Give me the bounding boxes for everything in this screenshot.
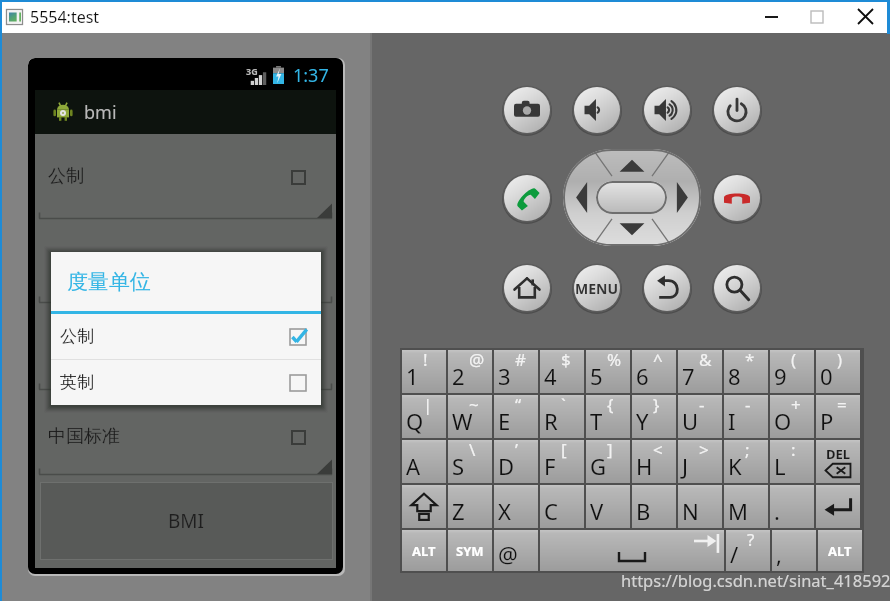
button[interactable]: End call (712, 173, 762, 223)
button[interactable]: W (448, 395, 492, 438)
button[interactable]: Space (540, 530, 724, 571)
staticText: K (728, 451, 742, 481)
staticText: S (452, 451, 465, 481)
button[interactable]: 0 (816, 350, 860, 393)
staticText: ’ (515, 438, 518, 461)
button[interactable]: 公制 (35, 134, 336, 220)
button[interactable]: . (770, 485, 814, 528)
staticText: V (590, 496, 604, 526)
button[interactable]: Home (502, 263, 552, 313)
button[interactable]: Select (596, 181, 667, 214)
button[interactable]: Maximize (794, 0, 840, 33)
staticText: Z (452, 496, 465, 526)
button[interactable]: @ (494, 530, 538, 571)
staticText: T (590, 406, 603, 436)
button[interactable]: O (770, 395, 814, 438)
staticText: 度量单位 (67, 269, 151, 295)
button[interactable]: 英制 (51, 360, 321, 405)
staticText: & (699, 348, 712, 371)
button[interactable]: MENU (572, 263, 622, 313)
staticText: A (406, 451, 421, 481)
button[interactable]: P (816, 395, 860, 438)
button[interactable] (35, 304, 336, 391)
button[interactable]: Volume up (642, 85, 692, 135)
button[interactable]: Call (502, 173, 552, 223)
button[interactable]: X (494, 485, 538, 528)
button[interactable]: 公制 (51, 314, 321, 359)
button[interactable]: H (632, 440, 676, 483)
button[interactable]: V (586, 485, 630, 528)
staticText: MENU (575, 279, 619, 298)
button[interactable]: 3 (494, 350, 538, 393)
button[interactable]: R (540, 395, 584, 438)
button[interactable]: Search (712, 263, 762, 313)
button[interactable]: Power (712, 85, 762, 135)
button[interactable]: 1 (402, 350, 446, 393)
button[interactable]: ALT (402, 530, 446, 571)
button[interactable]: G (586, 440, 630, 483)
staticText: U (682, 406, 699, 436)
button[interactable]: , (772, 530, 816, 571)
button[interactable]: U (678, 395, 722, 438)
button[interactable]: M (724, 485, 768, 528)
staticText: | (423, 393, 433, 416)
button[interactable]: 5 (586, 350, 630, 393)
button[interactable]: Delete (816, 440, 860, 483)
button[interactable]: 7 (678, 350, 722, 393)
button[interactable]: 9 (770, 350, 814, 393)
staticText: ( (791, 348, 797, 371)
button[interactable]: K (724, 440, 768, 483)
staticText: B (636, 496, 651, 526)
button[interactable]: Shift (402, 485, 446, 528)
button[interactable]: 4 (540, 350, 584, 393)
button[interactable]: B (632, 485, 676, 528)
button[interactable]: A (402, 440, 446, 483)
button[interactable]: Minimize (748, 0, 794, 33)
button[interactable]: S (448, 440, 492, 483)
staticText: P (820, 406, 834, 436)
staticText: E (498, 406, 511, 436)
button[interactable]: Enter (816, 485, 860, 528)
button[interactable]: Volume down (572, 85, 622, 135)
button[interactable]: SYM (448, 530, 492, 571)
button[interactable]: N (678, 485, 722, 528)
button[interactable]: ALT (818, 530, 862, 571)
staticText: “ (515, 393, 522, 416)
button[interactable]: I (724, 395, 768, 438)
staticText: \ (469, 438, 476, 461)
button[interactable]: 2 (448, 350, 492, 393)
button[interactable]: J (678, 440, 722, 483)
button[interactable]: F (540, 440, 584, 483)
staticText: ~ (469, 393, 479, 416)
staticText: ) (837, 348, 843, 371)
staticText: 2 (452, 361, 465, 391)
staticText: I (728, 406, 736, 436)
button[interactable]: 6 (632, 350, 676, 393)
button[interactable] (35, 220, 336, 304)
button[interactable]: Z (448, 485, 492, 528)
button[interactable]: C (540, 485, 584, 528)
staticText: > (699, 438, 709, 461)
button[interactable]: BMI (40, 482, 333, 560)
button[interactable]: Close (840, 0, 890, 33)
button[interactable]: D (494, 440, 538, 483)
button[interactable]: Y (632, 395, 676, 438)
staticText: C (544, 496, 558, 526)
staticText: 9 (774, 361, 787, 391)
button[interactable]: Camera (502, 85, 552, 135)
button[interactable]: 中国标准 (35, 391, 336, 476)
button[interactable]: 8 (724, 350, 768, 393)
button[interactable]: E (494, 395, 538, 438)
staticText: BMI (168, 508, 205, 534)
staticText: - (699, 393, 705, 416)
staticText: ! (423, 348, 428, 371)
staticText: 4 (544, 361, 557, 391)
staticText: H (636, 451, 653, 481)
button[interactable]: L (770, 440, 814, 483)
button[interactable]: Q (402, 395, 446, 438)
button[interactable]: T (586, 395, 630, 438)
staticText: 0 (820, 361, 833, 391)
button[interactable]: / (726, 530, 770, 571)
staticText: N (682, 496, 699, 526)
button[interactable]: Back (642, 263, 692, 313)
